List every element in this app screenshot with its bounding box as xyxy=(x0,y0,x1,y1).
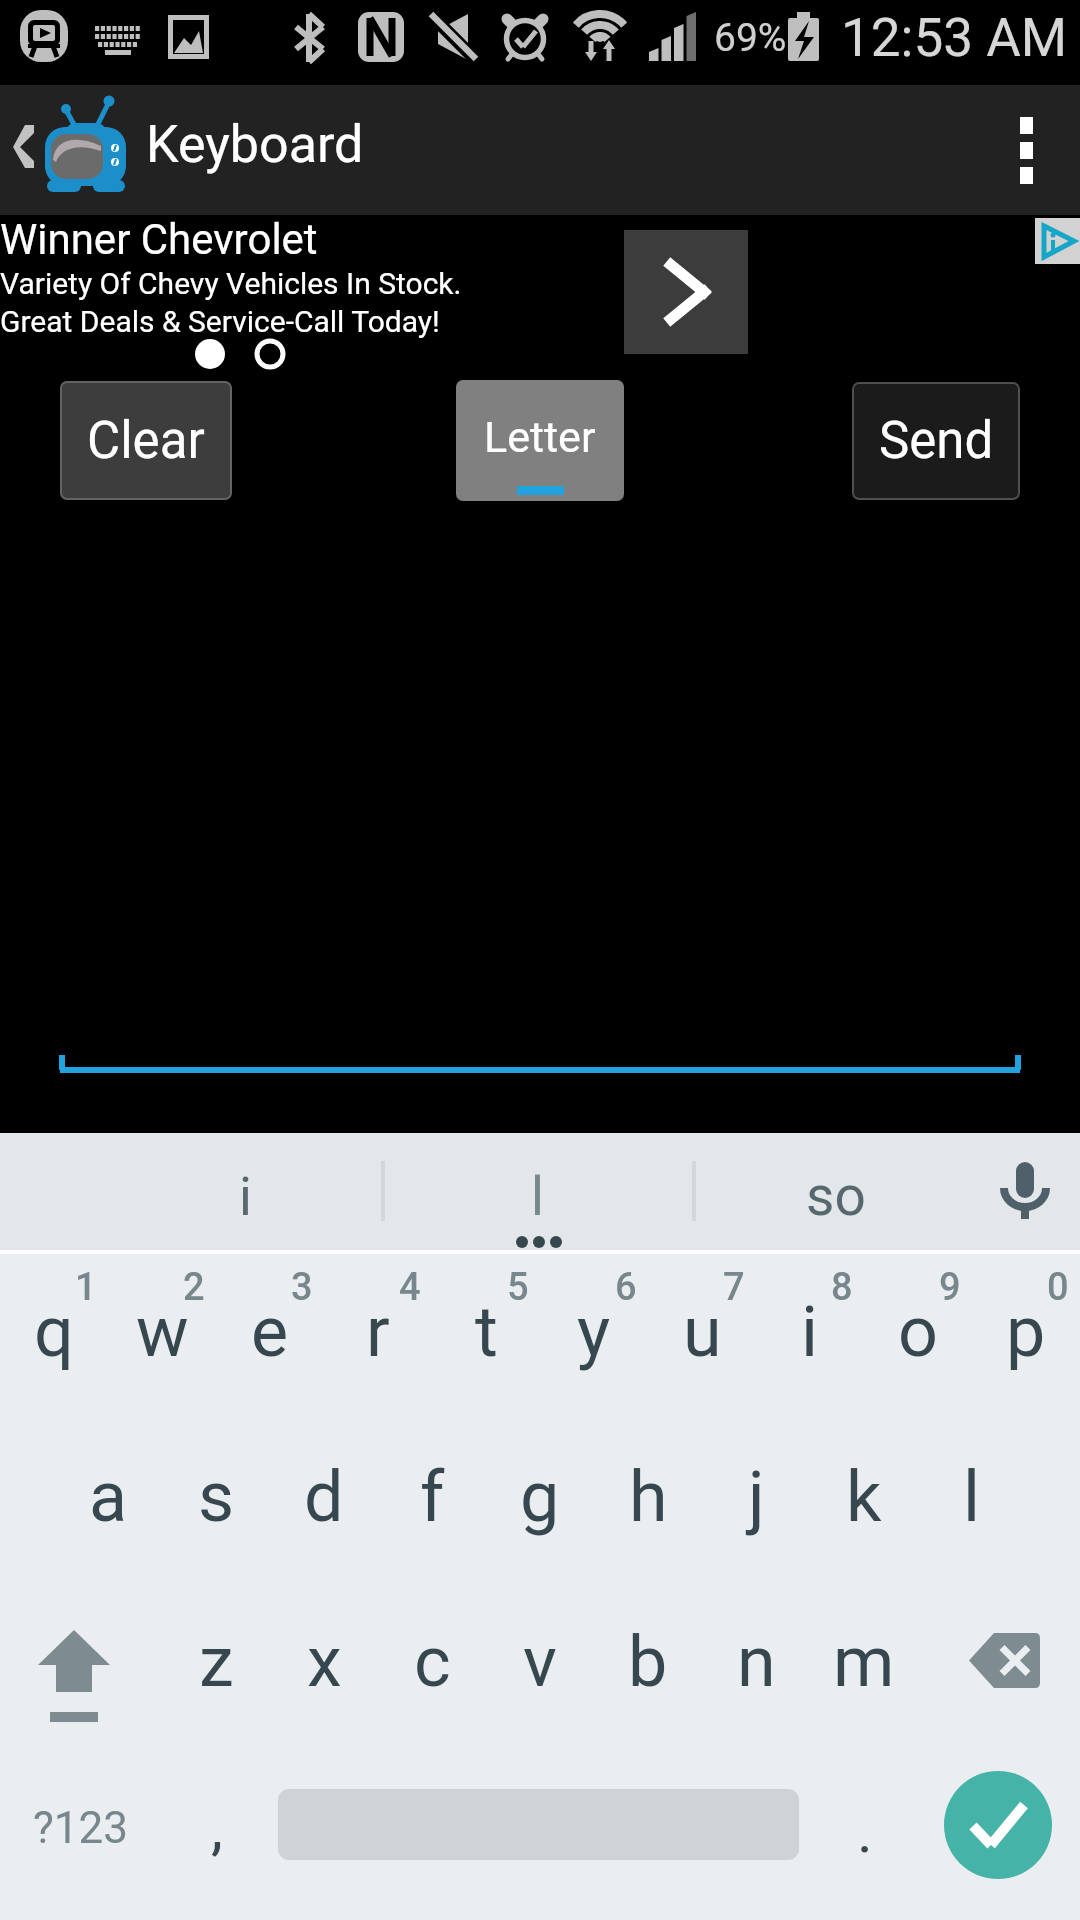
staticText: d xyxy=(304,1456,344,1538)
staticText: Keyboard xyxy=(146,114,364,175)
button[interactable]: c xyxy=(378,1608,486,1778)
button[interactable]: , xyxy=(162,1778,270,1920)
staticText: m xyxy=(833,1621,895,1703)
button[interactable]: m xyxy=(810,1608,918,1778)
staticText: v xyxy=(523,1621,557,1703)
staticText: so xyxy=(806,1164,866,1228)
staticText: 7 xyxy=(723,1265,745,1310)
staticText: 12:53 AM xyxy=(841,7,1067,69)
button[interactable]: b xyxy=(594,1608,702,1778)
button[interactable]: Delete xyxy=(940,1608,1080,1778)
button[interactable]: Clear xyxy=(60,381,232,500)
staticText: b xyxy=(628,1621,668,1703)
button[interactable]: a xyxy=(54,1428,162,1608)
staticText: o xyxy=(898,1291,938,1373)
staticText: q xyxy=(34,1291,74,1373)
staticText: u xyxy=(683,1291,722,1373)
button[interactable]: Shift xyxy=(0,1608,162,1778)
staticText: f xyxy=(420,1456,445,1538)
button[interactable]: Ad choices xyxy=(1035,218,1080,264)
button[interactable]: d xyxy=(270,1428,378,1608)
button[interactable]: Voice input xyxy=(975,1133,1080,1250)
button[interactable]: x xyxy=(270,1608,378,1778)
staticText: h xyxy=(629,1456,668,1538)
button[interactable]: n xyxy=(702,1608,810,1778)
button[interactable]: 2 xyxy=(108,1253,216,1428)
button[interactable]: 5 xyxy=(432,1253,540,1428)
button[interactable]: Winner Chevrolet xyxy=(0,215,1080,345)
staticText: 2 xyxy=(183,1265,205,1310)
button[interactable]: Send xyxy=(852,382,1020,500)
staticText: 69% xyxy=(714,15,787,61)
staticText: Send xyxy=(879,411,994,471)
staticText: e xyxy=(251,1291,289,1373)
staticText: x xyxy=(307,1621,342,1703)
staticText: 6 xyxy=(615,1265,637,1310)
staticText: z xyxy=(199,1621,234,1703)
staticText: i xyxy=(801,1291,819,1373)
staticText: n xyxy=(737,1621,776,1703)
button[interactable]: s xyxy=(162,1428,270,1608)
staticText: t xyxy=(475,1291,498,1373)
button[interactable]: 0 xyxy=(972,1253,1080,1428)
button[interactable]: 7 xyxy=(648,1253,756,1428)
staticText: g xyxy=(520,1456,560,1538)
button[interactable]: i xyxy=(145,1133,383,1250)
staticText: y xyxy=(577,1291,611,1373)
staticText: a xyxy=(89,1456,128,1538)
staticText: s xyxy=(198,1456,235,1538)
staticText: l xyxy=(531,1166,544,1228)
staticText: 0 xyxy=(1047,1265,1069,1310)
button[interactable]: Enter xyxy=(944,1771,1052,1879)
staticText: r xyxy=(366,1291,390,1373)
button[interactable]: l xyxy=(383,1133,694,1250)
button[interactable]: Letter xyxy=(456,380,624,501)
button[interactable]: 4 xyxy=(324,1253,432,1428)
staticText: Great Deals & Service-Call Today! xyxy=(0,304,440,339)
staticText: i xyxy=(239,1166,252,1228)
staticText: . xyxy=(857,1796,873,1866)
staticText: j xyxy=(748,1456,765,1538)
button[interactable]: 9 xyxy=(864,1253,972,1428)
staticText: 1 xyxy=(75,1265,97,1310)
staticText: c xyxy=(414,1621,451,1703)
button[interactable]: so xyxy=(694,1133,974,1250)
staticText: 5 xyxy=(507,1265,529,1310)
button[interactable]: ?123 xyxy=(0,1778,162,1920)
staticText: Winner Chevrolet xyxy=(0,215,318,264)
button[interactable]: l xyxy=(918,1428,1026,1608)
button[interactable]: k xyxy=(810,1428,918,1608)
button[interactable]: j xyxy=(702,1428,810,1608)
button[interactable]: More options xyxy=(970,85,1080,215)
staticText: ?123 xyxy=(33,1802,128,1854)
staticText: Clear xyxy=(87,411,205,471)
button[interactable]: Navigate up xyxy=(0,85,140,215)
button[interactable]: Next advertisement xyxy=(624,230,748,354)
staticText: l xyxy=(963,1456,981,1538)
button[interactable]: g xyxy=(486,1428,594,1608)
staticText: p xyxy=(1006,1291,1046,1373)
staticText: 3 xyxy=(291,1265,313,1310)
staticText: Letter xyxy=(484,412,596,462)
button[interactable]: 6 xyxy=(540,1253,648,1428)
staticText: , xyxy=(211,1792,223,1862)
staticText: k xyxy=(846,1456,882,1538)
button[interactable]: . xyxy=(810,1778,918,1920)
button[interactable]: f xyxy=(378,1428,486,1608)
button[interactable]: 8 xyxy=(756,1253,864,1428)
staticText: 8 xyxy=(831,1265,853,1310)
button[interactable]: h xyxy=(594,1428,702,1608)
button[interactable]: 1 xyxy=(0,1253,108,1428)
staticText: 9 xyxy=(939,1265,961,1310)
staticText: 4 xyxy=(399,1265,421,1310)
staticText: w xyxy=(136,1291,189,1373)
button[interactable]: v xyxy=(486,1608,594,1778)
button[interactable]: z xyxy=(162,1608,270,1778)
staticText: Variety Of Chevy Vehicles In Stock. xyxy=(0,266,462,301)
button[interactable]: 3 xyxy=(216,1253,324,1428)
